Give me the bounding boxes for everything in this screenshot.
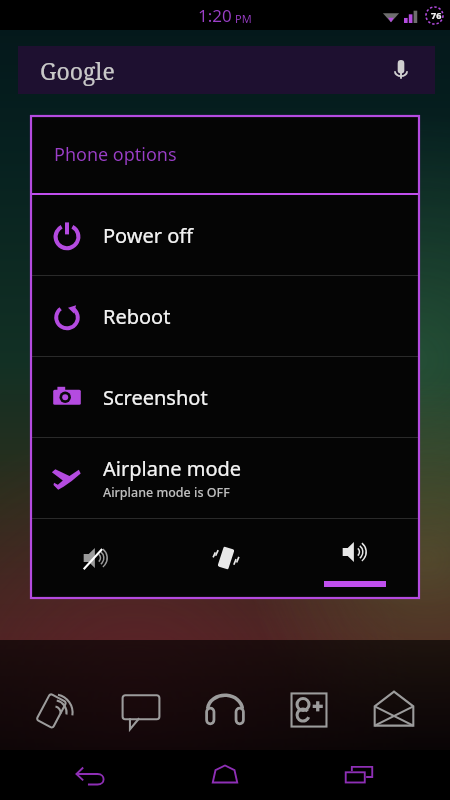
button[interactable]: Google — [18, 46, 435, 94]
button[interactable]: Google Plus — [281, 682, 337, 738]
button[interactable]: Back — [45, 750, 135, 800]
button[interactable]: Sound on — [290, 519, 419, 597]
button[interactable]: Airplane mode — [31, 438, 419, 518]
staticText: Airplane mode is OFF — [103, 484, 230, 501]
button[interactable]: Silent mode — [31, 519, 161, 597]
staticText: Screenshot — [103, 384, 208, 411]
button[interactable]: Reboot — [31, 276, 419, 356]
button[interactable]: Play Music — [197, 682, 253, 738]
button[interactable]: Email — [366, 682, 422, 738]
staticText: PM — [235, 11, 252, 26]
staticText: Google — [40, 55, 115, 86]
staticText: Power off — [103, 222, 194, 249]
button[interactable]: Vibrate mode — [161, 519, 290, 597]
staticText: Airplane mode — [103, 455, 242, 482]
staticText: Phone options — [54, 142, 177, 167]
button[interactable]: Screenshot — [31, 357, 419, 437]
staticText: 1:20 — [198, 4, 232, 27]
button[interactable]: Recent apps — [315, 750, 405, 800]
button[interactable]: Home — [180, 750, 270, 800]
button[interactable]: Android Beam — [28, 682, 84, 738]
button[interactable]: Talk — [113, 682, 169, 738]
button[interactable]: Power off — [31, 195, 419, 275]
button[interactable]: Voice search — [385, 54, 417, 86]
staticText: Reboot — [103, 303, 171, 330]
staticText: 76 — [431, 9, 442, 21]
